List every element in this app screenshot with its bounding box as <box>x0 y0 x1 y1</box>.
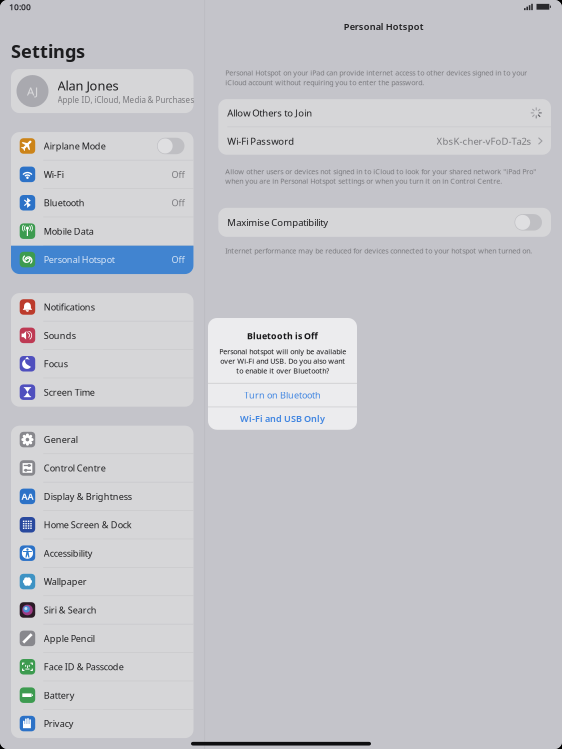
staticText: AJ <box>27 83 38 99</box>
staticText: Bluetooth is Off <box>247 330 318 342</box>
staticText: Notifications <box>44 301 95 313</box>
staticText: Apple Pencil <box>44 632 95 644</box>
staticText: Accessibility <box>44 547 93 559</box>
button[interactable]: Screen Time <box>11 378 193 407</box>
staticText: Internet performance may be reduced for … <box>225 246 532 255</box>
button[interactable]: Battery <box>11 681 193 710</box>
staticText: Off <box>171 254 184 266</box>
button[interactable]: Privacy <box>11 710 193 738</box>
staticText: Alan Jones <box>57 77 118 94</box>
staticText: Allow Others to Join <box>227 107 312 119</box>
staticText: 10:00 <box>9 1 31 13</box>
staticText: Bluetooth <box>44 197 85 209</box>
button[interactable]: Notifications <box>11 293 193 321</box>
staticText: Screen Time <box>44 386 95 398</box>
staticText: Home Screen & Dock <box>44 519 132 531</box>
staticText: Privacy <box>44 718 74 730</box>
staticText: Display & Brightness <box>44 490 132 502</box>
staticText: Wi-Fi Password <box>227 135 294 147</box>
button[interactable]: Apple Pencil <box>11 624 193 653</box>
staticText: Wi-Fi and USB Only <box>240 412 325 424</box>
button[interactable]: Face ID & Passcode <box>11 653 193 681</box>
staticText: Battery <box>44 689 75 701</box>
staticText: Off <box>171 168 184 180</box>
button[interactable]: Accessibility <box>11 539 193 568</box>
staticText: Face ID & Passcode <box>44 661 124 673</box>
staticText: Siri & Search <box>44 604 97 616</box>
button[interactable]: Airplane Mode <box>11 132 193 160</box>
button[interactable]: Bluetooth <box>11 189 193 217</box>
staticText: Wi-Fi <box>44 168 64 180</box>
button[interactable]: Mobile Data <box>11 217 193 246</box>
button[interactable]: Home Screen & Dock <box>11 511 193 539</box>
button[interactable]: Focus <box>11 350 193 378</box>
button[interactable]: Control Centre <box>11 454 193 482</box>
staticText: Personal hotspot will only be available … <box>219 347 346 375</box>
button[interactable]: Siri & Search <box>11 596 193 624</box>
button[interactable]: Wi-Fi <box>11 160 193 189</box>
button[interactable]: Wallpaper <box>11 568 193 596</box>
staticText: Control Centre <box>44 462 106 474</box>
staticText: Turn on Bluetooth <box>244 389 321 401</box>
button[interactable]: Turn on Bluetooth <box>208 384 357 407</box>
button[interactable]: Allow Others to Join <box>218 99 551 127</box>
button[interactable]: AJ <box>11 69 193 113</box>
button[interactable]: Wi-Fi Password <box>218 127 551 155</box>
staticText: Off <box>171 197 184 209</box>
button[interactable]: General <box>11 426 193 454</box>
button[interactable]: AA <box>11 482 193 511</box>
staticText: Sounds <box>44 329 76 341</box>
button[interactable]: Sounds <box>11 321 193 350</box>
staticText: General <box>44 434 78 446</box>
staticText: Personal Hotspot on your iPad can provid… <box>225 68 527 87</box>
staticText: XbsK-cher-vFoD-Ta2s <box>436 135 531 147</box>
button[interactable]: Maximise Compatibility <box>218 208 551 237</box>
staticText: Personal Hotspot <box>44 254 115 266</box>
staticText: Airplane Mode <box>44 140 106 152</box>
button[interactable]: Personal Hotspot <box>11 246 193 274</box>
staticText: Allow other users or devices not signed … <box>225 167 536 186</box>
staticText: Maximise Compatibility <box>227 216 328 229</box>
staticText: AA <box>21 490 33 502</box>
button[interactable]: Wi-Fi and USB Only <box>208 407 357 430</box>
staticText: Focus <box>44 358 68 370</box>
staticText: Wallpaper <box>44 576 87 588</box>
staticText: Mobile Data <box>44 225 94 237</box>
staticText: Personal Hotspot <box>344 20 424 33</box>
staticText: Settings <box>11 39 85 63</box>
staticText: Apple ID, iCloud, Media & Purchases <box>57 94 194 105</box>
